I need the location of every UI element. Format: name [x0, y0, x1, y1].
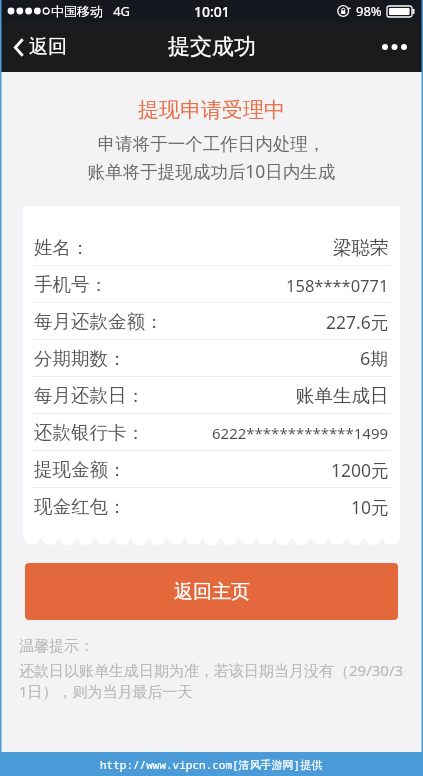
staticText: 返回 — [29, 35, 67, 59]
staticText: 返回主页 — [174, 580, 250, 604]
staticText: 分期期数： — [34, 347, 127, 370]
staticText: 227.6元 — [326, 310, 389, 334]
staticText: 每月还款金额： — [34, 310, 164, 333]
staticText: 每月还款日： — [34, 384, 145, 407]
staticText: 申请将于一个工作日内处理， 账单将于提现成功后10日内生成 — [0, 133, 423, 183]
staticText: 10元 — [351, 495, 389, 519]
staticText: 还款银行卡： — [34, 421, 145, 444]
staticText: 姓名： — [34, 236, 90, 259]
staticText: 提交成功 — [168, 33, 256, 61]
staticText: 中国移动 4G — [51, 2, 131, 20]
staticText: 温馨提示： — [19, 637, 94, 656]
button[interactable]: 返回主页 — [25, 563, 398, 620]
staticText: 1200元 — [331, 458, 389, 482]
staticText: 账单生成日 — [296, 384, 389, 407]
staticText: 手机号： — [34, 273, 108, 296]
staticText: 梁聪荣 — [333, 236, 389, 259]
staticText: 158****0771 — [286, 274, 389, 296]
button[interactable]: Back — [0, 26, 81, 68]
button[interactable]: More options — [367, 29, 423, 65]
staticText: 现金红包： — [34, 495, 127, 518]
staticText: 6期 — [360, 346, 389, 371]
staticText: 6222*************1499 — [212, 423, 389, 443]
staticText: 提现申请受理中 — [0, 97, 423, 123]
staticText: http://www.vipcn.com[清风手游网]提供 — [100, 757, 323, 772]
staticText: 98% — [356, 2, 382, 20]
staticText: 还款日以账单生成日期为准，若该日期当月没有（29/30/3 1日），则为当月最后… — [19, 660, 404, 701]
staticText: 提现金额： — [34, 458, 127, 481]
staticText: 10:01 — [194, 2, 230, 21]
